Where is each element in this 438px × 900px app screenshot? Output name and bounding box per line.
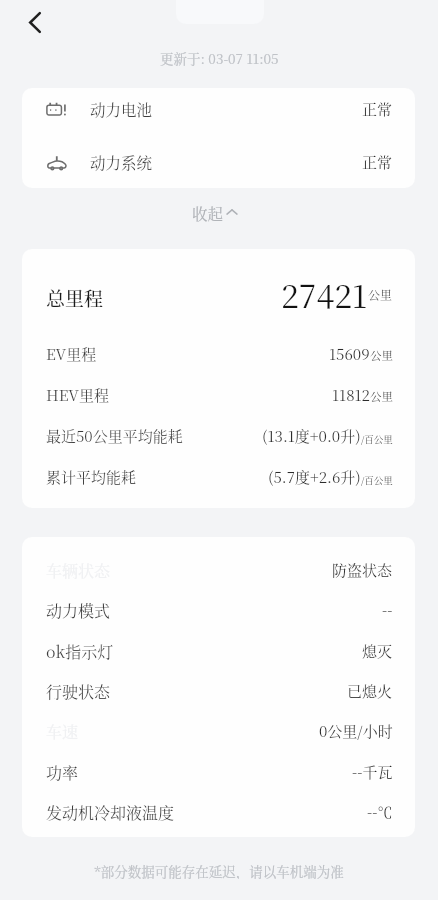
staticText: --千瓦 [352,761,393,783]
staticText: 15609 [329,343,370,365]
staticText: 更新于: 03-07 11:05 [160,48,279,67]
staticText: 27421 [281,271,368,317]
staticText: 公里 [368,286,393,303]
staticText: 已熄火 [347,680,393,702]
button[interactable]: 收起 [178,196,251,228]
staticText: /百公里 [361,473,393,487]
staticText: /百公里 [361,432,393,446]
button[interactable]: Back [13,0,57,44]
staticText: 发动机冷却液温度 [46,801,175,824]
staticText: 收起 [192,202,224,222]
staticText: 11812 [332,384,370,406]
staticText: 最近50公里平均能耗 [46,425,183,447]
staticText: 防盗状态 [332,559,393,581]
staticText: (5.7度+2.6升) [268,466,361,488]
staticText: 公里 [370,388,393,405]
staticText: *部分数据可能存在延迟，请以车机端为准 [94,861,344,879]
staticText: 行驶状态 [46,680,111,703]
staticText: 功率 [46,761,79,784]
staticText: 车速 [46,720,79,743]
staticText: 正常 [362,98,393,120]
staticText: (13.1度+0.0升) [262,425,361,447]
staticText: EV里程 [46,343,97,365]
staticText: 0公里/小时 [319,720,393,742]
staticText: 动力模式 [46,599,111,622]
staticText: --℃ [367,801,393,823]
staticText: 总里程 [46,284,104,311]
staticText: -- [382,599,393,621]
staticText: 动力系统 [90,151,153,173]
staticText: 动力电池 [90,98,153,120]
staticText: 车辆状态 [46,559,111,582]
staticText: 熄灭 [362,640,393,662]
button[interactable]: 动力电池 [22,88,415,134]
staticText: 公里 [370,347,393,364]
staticText: 累计平均能耗 [46,466,137,488]
button[interactable]: 动力系统 [22,136,415,187]
staticText: ok指示灯 [46,640,114,663]
staticText: 正常 [362,151,393,173]
staticText: HEV里程 [46,384,110,406]
